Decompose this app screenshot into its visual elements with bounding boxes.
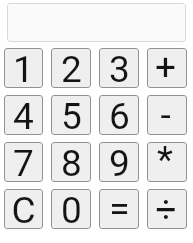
button[interactable]: + (147, 48, 187, 88)
staticText: 0 (61, 189, 82, 229)
staticText: = (109, 189, 130, 227)
staticText: 8 (61, 142, 82, 182)
staticText: C (11, 189, 36, 229)
button[interactable]: 8 (51, 142, 91, 182)
button[interactable]: 9 (99, 142, 139, 182)
button[interactable]: ÷ (147, 189, 187, 229)
staticText: 6 (109, 95, 130, 135)
button[interactable] (7, 3, 186, 42)
staticText: 3 (109, 48, 130, 88)
button[interactable]: 2 (51, 48, 91, 88)
button[interactable]: * (147, 142, 187, 182)
button[interactable]: 7 (4, 142, 43, 182)
button[interactable]: - (147, 95, 187, 135)
staticText: * (157, 142, 173, 178)
staticText: - (160, 95, 171, 134)
staticText: 9 (109, 142, 130, 182)
staticText: 5 (61, 95, 82, 135)
button[interactable]: 0 (51, 189, 91, 229)
button[interactable]: 4 (4, 95, 43, 135)
button[interactable]: 6 (99, 95, 139, 135)
staticText: 7 (13, 142, 34, 182)
button[interactable]: 3 (99, 48, 139, 88)
button[interactable]: 5 (51, 95, 91, 135)
staticText: 4 (13, 95, 34, 135)
button[interactable]: = (99, 189, 139, 229)
button[interactable]: C (4, 189, 43, 229)
staticText: + (155, 48, 176, 86)
staticText: 1 (13, 48, 34, 88)
staticText: 2 (61, 48, 82, 88)
button[interactable]: 1 (4, 48, 43, 88)
staticText: ÷ (155, 189, 177, 228)
